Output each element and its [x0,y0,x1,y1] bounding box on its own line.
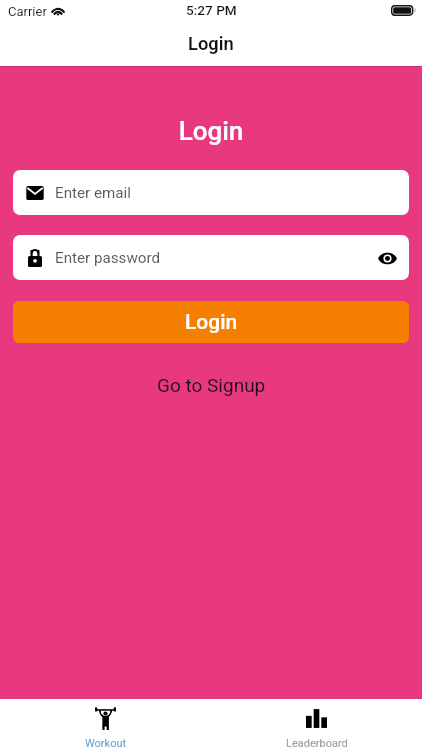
staticText: Login [185,310,238,335]
staticText: Leaderboard [286,737,348,750]
staticText: 5:27 PM [186,2,237,18]
staticText: Workout [85,737,127,750]
staticText: Enter password [55,249,161,267]
button[interactable]: Leaderboard [211,699,422,750]
button[interactable]: Enter email [13,170,409,215]
staticText: Go to Signup [157,374,266,396]
button[interactable]: Toggle password visibility [374,245,400,271]
button[interactable]: Workout [0,699,211,750]
staticText: Carrier [8,4,47,19]
staticText: Login [0,116,422,146]
button[interactable]: Go to Signup [149,371,274,399]
staticText: Enter email [55,184,131,202]
button[interactable]: Enter password [13,235,409,280]
button[interactable]: Login [13,301,409,343]
staticText: Login [188,33,234,54]
